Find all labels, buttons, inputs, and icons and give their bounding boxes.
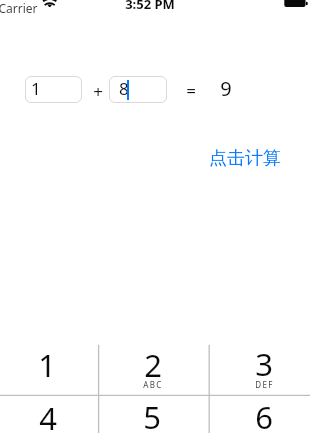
staticText: 3 (255, 343, 273, 385)
staticText: DEF (255, 379, 274, 390)
button[interactable]: 点击计算 (205, 146, 285, 171)
staticText: 2 (144, 344, 162, 386)
staticText: = (186, 79, 196, 102)
button[interactable] (209, 395, 310, 436)
button[interactable]: 1 (25, 76, 82, 103)
staticText: + (93, 80, 103, 103)
staticText: 4 (39, 397, 57, 436)
staticText: 8 (119, 77, 129, 100)
button[interactable] (0, 395, 99, 436)
staticText: ABC (143, 379, 163, 390)
button[interactable] (0, 341, 99, 395)
staticText: 3:52 PM (125, 0, 175, 13)
button[interactable] (99, 395, 210, 436)
staticText: 9 (220, 75, 232, 102)
staticText: Carrier (0, 0, 38, 16)
button[interactable] (99, 341, 210, 395)
button[interactable] (209, 341, 310, 395)
staticText: 6 (255, 396, 273, 436)
button[interactable]: 8 (109, 76, 167, 103)
staticText: 1 (38, 344, 56, 386)
staticText: 1 (31, 77, 41, 100)
staticText: 点击计算 (209, 147, 281, 170)
staticText: 5 (143, 396, 161, 436)
